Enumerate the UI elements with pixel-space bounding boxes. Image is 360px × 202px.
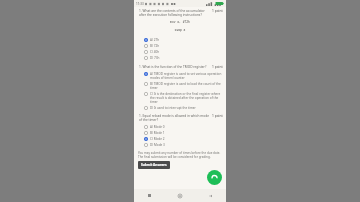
- button[interactable]: A) Mode 0: [134, 124, 226, 130]
- staticText: 1 point: [212, 114, 223, 118]
- staticText: B) TMOD register is used to load the cou…: [150, 82, 222, 90]
- staticText: C) 40h: [150, 50, 160, 54]
- staticText: 1 point: [212, 65, 223, 69]
- staticText: 1 point: [212, 9, 223, 13]
- button[interactable]: B) TMOD register is used to load the cou…: [134, 81, 226, 91]
- button[interactable]: C) 40h: [134, 49, 226, 55]
- button[interactable]: D) 73h: [134, 55, 226, 61]
- button[interactable]: Home: [164, 189, 195, 202]
- staticText: You may submit any number of times befor…: [138, 151, 223, 159]
- button[interactable]: C) Mode 2: [134, 136, 226, 142]
- button[interactable]: C) It is the destination or the final re…: [134, 91, 226, 105]
- staticText: 1. What are the contents of the accumula…: [139, 9, 210, 17]
- button[interactable]: B) Mode 1: [134, 130, 226, 136]
- staticText: B) 72h: [150, 44, 160, 48]
- staticText: C) It is the destination or the final re…: [150, 92, 222, 104]
- staticText: A) 27h: [150, 38, 160, 42]
- button[interactable]: A) 27h: [134, 37, 226, 43]
- staticText: D) Mode 3: [150, 143, 165, 147]
- button[interactable]: B) 72h: [134, 43, 226, 49]
- staticText: 11:33: [136, 2, 144, 6]
- staticText: 1. What is the function of the TMOD regi…: [139, 65, 210, 69]
- staticText: A) Mode 0: [150, 125, 165, 129]
- staticText: D) It used to interrupt the timer: [150, 106, 196, 110]
- staticText: swap a: [134, 28, 226, 32]
- staticText: 1. Equal reload mode is allowed in which…: [139, 114, 210, 122]
- button[interactable]: D) Mode 3: [134, 142, 226, 148]
- staticText: B) Mode 1: [150, 131, 165, 135]
- button[interactable]: A) TMOD register is used to set various …: [134, 71, 226, 81]
- button[interactable]: D) It used to interrupt the timer: [134, 105, 226, 111]
- staticText: A) TMOD register is used to set various …: [150, 72, 222, 80]
- button[interactable]: WhatsApp chat: [207, 170, 222, 185]
- staticText: mov a, #72h: [134, 20, 226, 24]
- staticText: D) 73h: [150, 56, 160, 60]
- button[interactable]: Submit Answers: [138, 161, 170, 169]
- staticText: C) Mode 2: [150, 137, 165, 141]
- button[interactable]: Recent apps: [134, 189, 164, 202]
- staticText: Submit Answers: [141, 163, 167, 167]
- button[interactable]: Back: [195, 189, 226, 202]
